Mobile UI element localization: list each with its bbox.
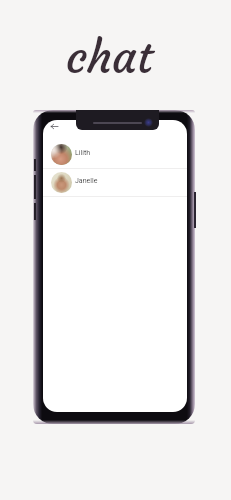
button[interactable]: Janelle <box>43 169 187 197</box>
staticText: chat <box>66 29 153 85</box>
staticText: Lilith <box>75 149 91 157</box>
button[interactable]: Lilith <box>43 141 187 169</box>
staticText: Janelle <box>75 177 98 185</box>
button[interactable]: Back <box>49 121 60 132</box>
